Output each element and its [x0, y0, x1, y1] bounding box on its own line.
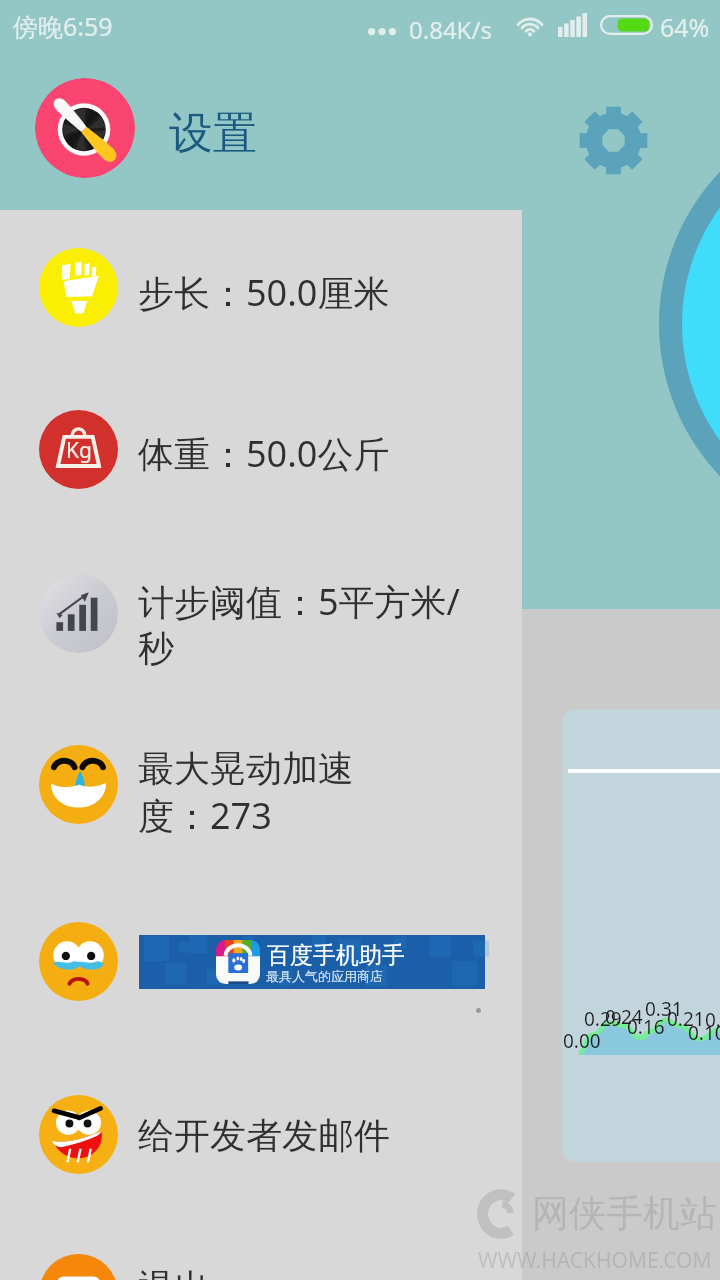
staticText: 0.16 — [627, 1014, 665, 1040]
staticText: 0.84K/s — [409, 13, 492, 46]
staticText: 0.10 — [688, 1020, 720, 1046]
staticText: 0.29 — [584, 1006, 622, 1032]
staticText: 体重：50.0公斤 — [138, 429, 390, 478]
button[interactable]: Advertisement — [139, 935, 485, 989]
staticText: 度：273 — [138, 791, 272, 840]
button[interactable] — [0, 1233, 522, 1280]
staticText: 秒 — [138, 626, 174, 671]
staticText: 最具人气的应用商店 — [266, 968, 383, 984]
staticText: Kg — [66, 436, 92, 465]
staticText: 网侠手机站 — [532, 1190, 717, 1237]
staticText: 百度手机助手 — [267, 941, 405, 970]
button[interactable]: Kg — [0, 389, 522, 509]
staticText: 0.31 — [645, 996, 683, 1022]
staticText: 0. — [705, 1007, 720, 1033]
button[interactable] — [0, 227, 522, 347]
button[interactable] — [0, 901, 522, 1021]
button[interactable]: 设置 — [169, 106, 257, 161]
staticText: 0.24 — [605, 1004, 643, 1030]
button[interactable] — [0, 1074, 522, 1194]
staticText: 步长：50.0厘米 — [138, 268, 390, 317]
staticText: 64% — [660, 10, 710, 44]
staticText: 傍晚6:59 — [13, 9, 113, 43]
staticText: 最大晃动加速 — [138, 746, 354, 791]
button[interactable]: Settings — [579, 106, 648, 175]
staticText: 退出 — [138, 1265, 210, 1280]
button[interactable] — [0, 724, 522, 844]
button[interactable]: App icon — [35, 78, 135, 178]
staticText: 0.21 — [667, 1006, 705, 1032]
staticText: 给开发者发邮件 — [138, 1113, 390, 1158]
staticText: 0.00 — [563, 1028, 601, 1054]
staticText: WWW.HACKHOME.COM — [478, 1246, 712, 1275]
button[interactable] — [0, 553, 522, 673]
staticText: 计步阈值：5平方米/ — [138, 577, 460, 626]
